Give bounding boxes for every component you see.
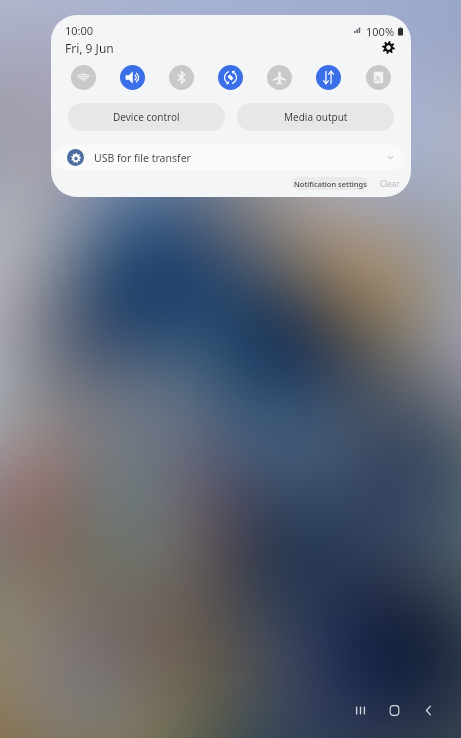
- button[interactable]: Wi-Fi: [71, 65, 96, 90]
- staticText: 10:00: [65, 23, 94, 38]
- staticText: Device control: [113, 110, 180, 124]
- staticText: USB for file transfer: [94, 151, 191, 165]
- button[interactable]: Mobile data: [316, 65, 341, 90]
- staticText: Fri, 9 Jun: [65, 40, 114, 56]
- button[interactable]: Mobile hotspot: [366, 65, 391, 90]
- staticText: Media output: [284, 110, 348, 124]
- button[interactable]: Settings: [376, 35, 401, 60]
- button[interactable]: Sound: [120, 65, 145, 90]
- button[interactable]: Media output: [237, 103, 394, 131]
- button[interactable]: Notification settings: [292, 177, 368, 190]
- button[interactable]: Flight mode: [267, 65, 292, 90]
- button[interactable]: Device control: [68, 103, 225, 131]
- staticText: 100%: [366, 24, 395, 39]
- button[interactable]: Clear: [376, 177, 404, 190]
- staticText: Notification settings: [294, 179, 367, 189]
- button[interactable]: Auto rotate: [218, 65, 243, 90]
- button[interactable]: Home: [380, 696, 408, 724]
- staticText: Clear: [380, 178, 400, 189]
- button[interactable]: USB for file transfer: [54, 145, 404, 170]
- button[interactable]: Recents: [346, 696, 374, 724]
- button[interactable]: Bluetooth: [169, 65, 194, 90]
- button[interactable]: Back: [414, 696, 442, 724]
